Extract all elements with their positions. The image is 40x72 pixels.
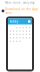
staticText: Today	[10, 20, 18, 23]
staticText: Download on the App Store	[5, 7, 38, 14]
staticText: More done, every day.	[5, 1, 35, 4]
